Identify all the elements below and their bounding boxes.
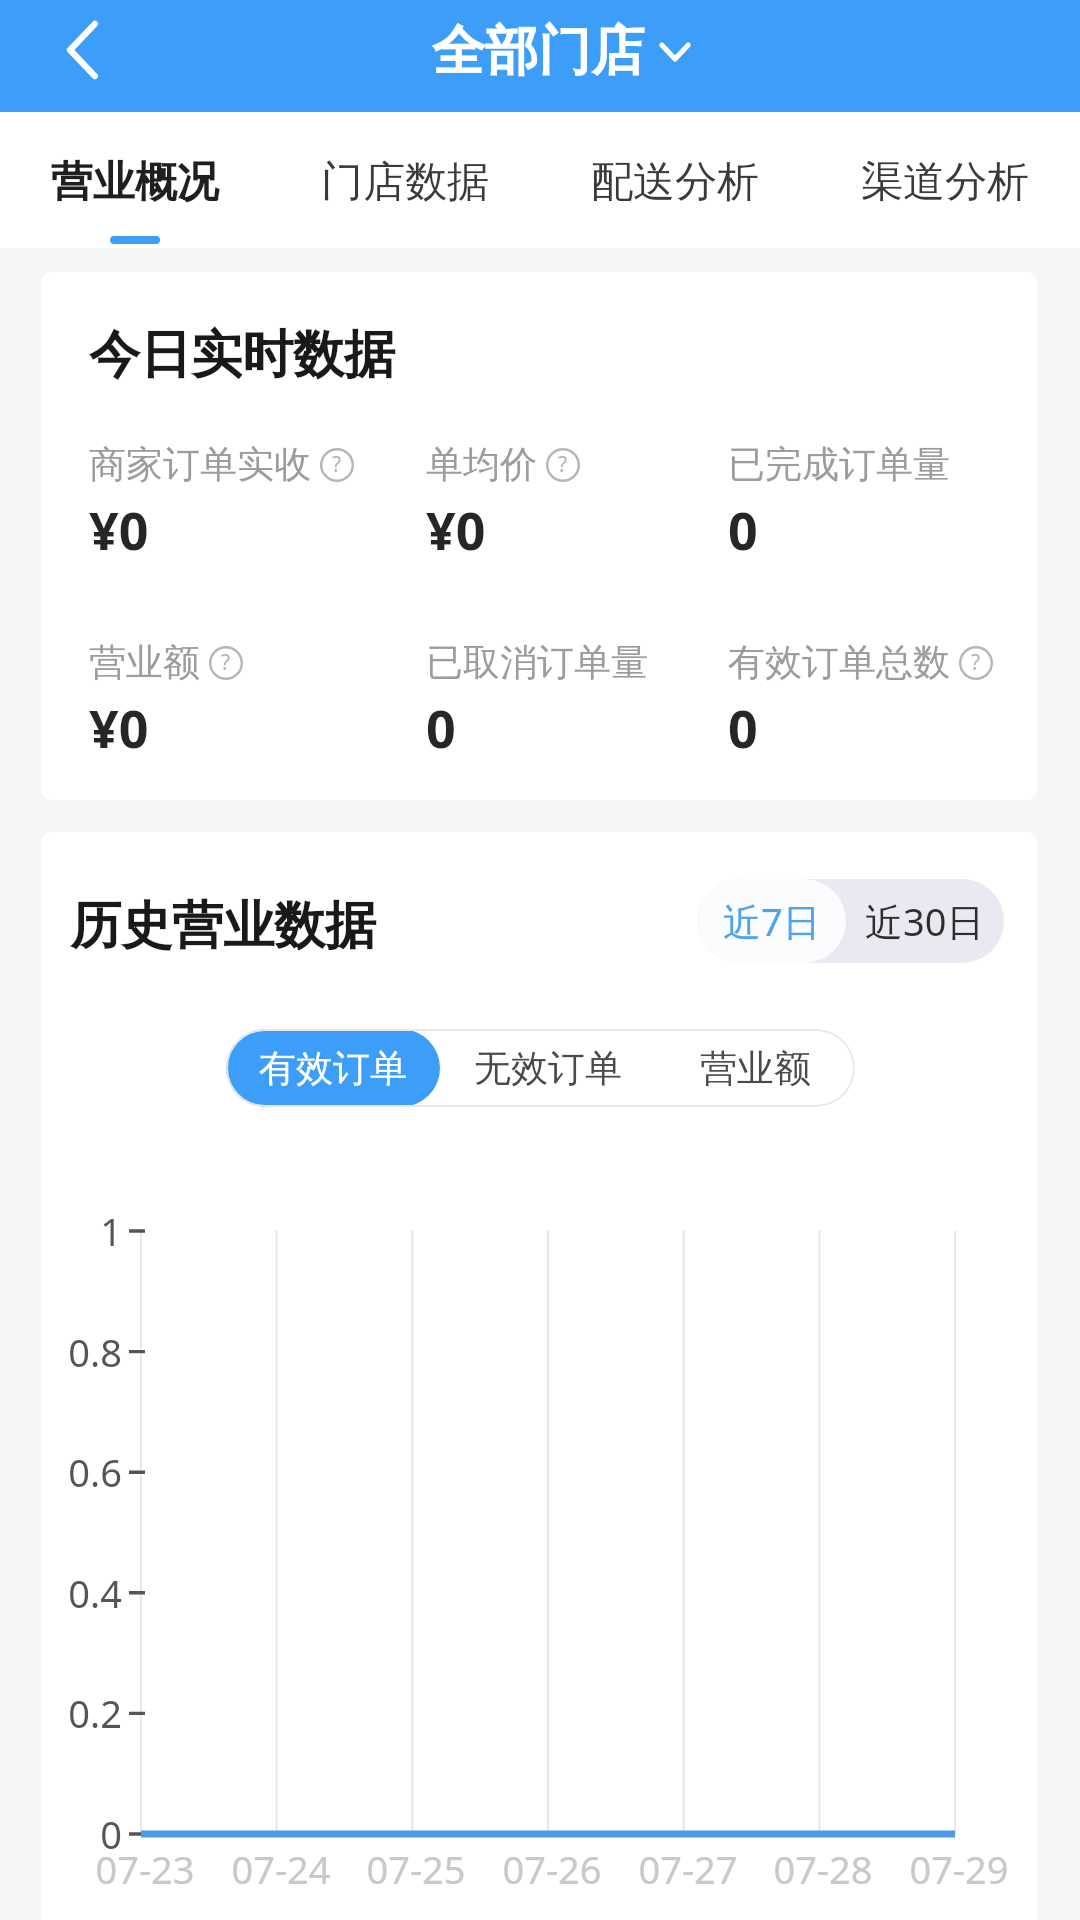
- staticText: 营业概况: [51, 156, 219, 209]
- staticText: ?: [332, 450, 342, 479]
- staticText: ?: [221, 648, 231, 677]
- staticText: 全部门店: [432, 18, 644, 85]
- button[interactable]: 渠道分析: [810, 112, 1080, 248]
- staticText: ¥0: [89, 692, 149, 763]
- button[interactable]: 近30日: [846, 879, 1004, 963]
- staticText: 0: [100, 1808, 122, 1860]
- staticText: 历史营业数据: [70, 894, 376, 958]
- staticText: ?: [971, 648, 981, 677]
- staticText: 已取消订单量: [426, 639, 648, 686]
- button[interactable]: 营业额: [656, 1029, 855, 1107]
- staticText: 营业额: [700, 1045, 811, 1092]
- staticText: 1: [100, 1205, 122, 1257]
- staticText: 0: [426, 692, 456, 763]
- staticText: 0: [728, 494, 758, 565]
- staticText: 渠道分析: [861, 156, 1029, 209]
- staticText: 07-29: [909, 1843, 1009, 1895]
- button[interactable]: 配送分析: [540, 112, 810, 248]
- staticText: 有效订单总数: [728, 639, 950, 686]
- staticText: 0.2: [68, 1687, 122, 1739]
- staticText: 配送分析: [591, 156, 759, 209]
- staticText: 07-28: [773, 1843, 873, 1895]
- staticText: 0.4: [68, 1567, 122, 1619]
- staticText: 商家订单实收: [89, 441, 311, 488]
- staticText: 07-24: [231, 1843, 331, 1895]
- staticText: 今日实时数据: [89, 323, 395, 387]
- staticText: 无效订单: [474, 1045, 622, 1092]
- staticText: 营业额: [89, 639, 200, 686]
- button[interactable]: 近7日: [698, 879, 846, 963]
- staticText: 已完成订单量: [728, 441, 950, 488]
- staticText: ¥0: [89, 494, 149, 565]
- staticText: 07-23: [95, 1843, 195, 1895]
- staticText: 门店数据: [321, 156, 489, 209]
- button[interactable]: 全部门店: [400, 0, 680, 112]
- staticText: 近7日: [723, 895, 821, 947]
- button[interactable]: 有效订单: [226, 1029, 440, 1107]
- button[interactable]: 门店数据: [270, 112, 540, 248]
- staticText: ?: [558, 450, 568, 479]
- staticText: 07-27: [638, 1843, 738, 1895]
- staticText: ¥0: [426, 494, 486, 565]
- button[interactable]: 无效订单: [440, 1029, 656, 1107]
- staticText: 0.8: [68, 1326, 122, 1378]
- staticText: 有效订单: [259, 1045, 407, 1092]
- staticText: 0.6: [68, 1446, 122, 1498]
- staticText: 近30日: [865, 895, 985, 947]
- staticText: 0: [728, 692, 758, 763]
- staticText: 07-25: [366, 1843, 466, 1895]
- button[interactable]: Back: [0, 0, 160, 112]
- button[interactable]: 营业概况: [0, 112, 270, 248]
- staticText: 单均价: [426, 441, 537, 488]
- staticText: 07-26: [502, 1843, 602, 1895]
